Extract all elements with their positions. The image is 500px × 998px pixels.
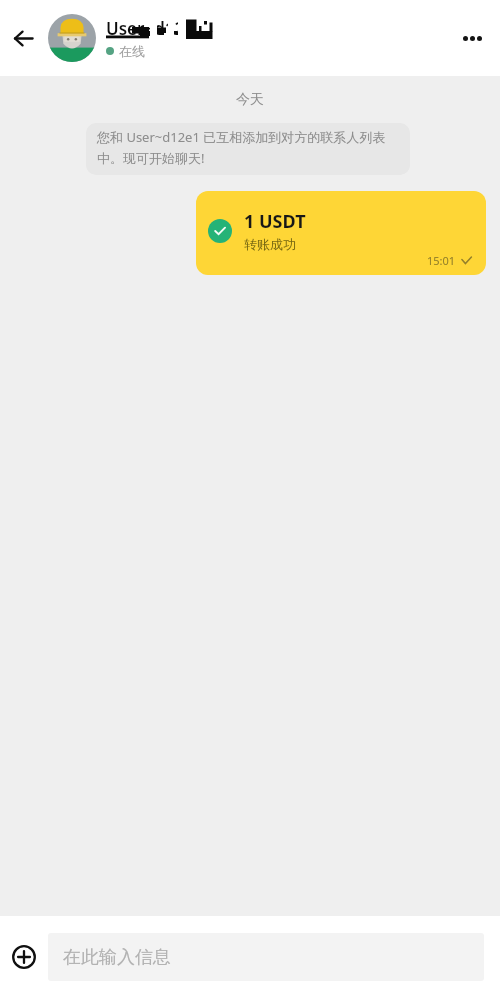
button[interactable]: 在此输入信息 <box>48 933 484 981</box>
button[interactable]: Add attachment <box>6 939 42 975</box>
staticText: User~d12e1 <box>106 17 204 40</box>
staticText: 今天 <box>0 91 500 109</box>
staticText: 在此输入信息 <box>63 946 171 969</box>
button[interactable]: More options <box>445 8 500 68</box>
button[interactable]: Back <box>0 13 46 63</box>
staticText: 您和 User~d12e1 已互相添加到对方的联系人列表中。现可开始聊天! <box>97 128 399 167</box>
staticText: 转账成功 <box>244 236 296 252</box>
button[interactable]: 1 USDT <box>196 191 486 275</box>
staticText: 15:01 <box>427 253 456 268</box>
staticText: 1 USDT <box>244 209 306 234</box>
button[interactable]: 您和 User~d12e1 已互相添加到对方的联系人列表中。现可开始聊天! <box>86 123 410 175</box>
staticText: 在线 <box>119 43 145 59</box>
